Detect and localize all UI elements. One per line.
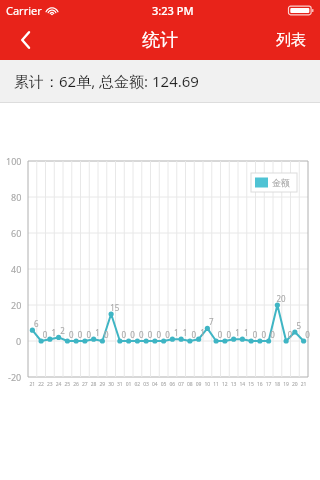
staticText: 累计：62单, 总金额: 124.69 [14, 71, 199, 91]
button[interactable]: 累计：62单, 总金额: 124.69 [0, 60, 320, 102]
button[interactable]: 列表 [262, 20, 320, 60]
button[interactable]: Back [0, 20, 50, 60]
staticText: Carrier [6, 3, 42, 18]
staticText: 3:23 PM [152, 3, 194, 18]
staticText: 列表 [276, 31, 306, 50]
staticText: 统计 [142, 29, 178, 52]
